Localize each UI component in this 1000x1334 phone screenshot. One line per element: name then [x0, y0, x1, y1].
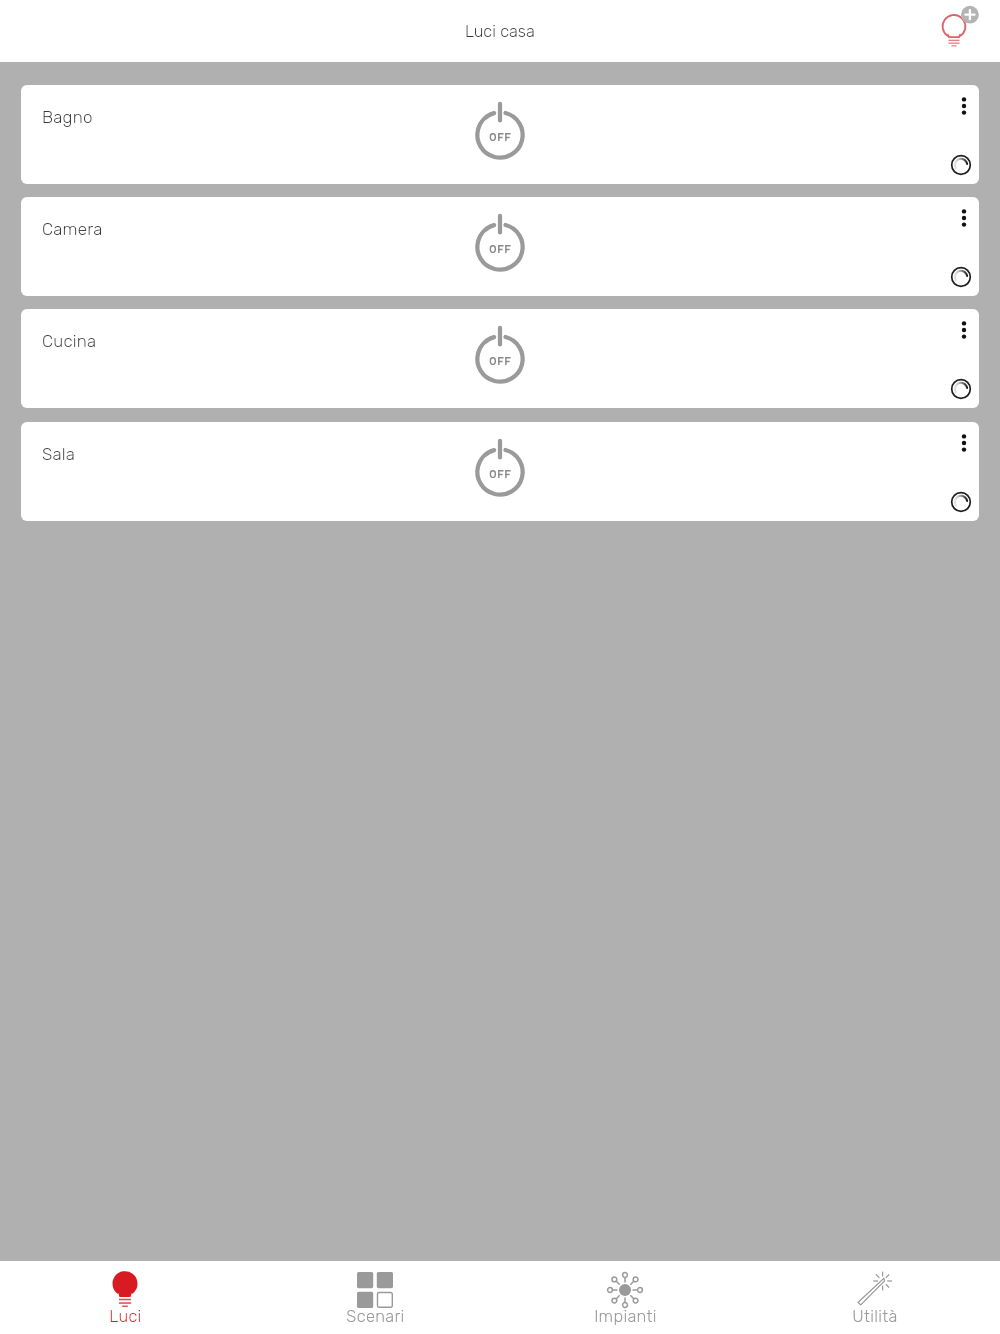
button[interactable]: Accendi Camera — [465, 212, 535, 282]
staticText: Luci casa — [465, 22, 535, 42]
staticText: Sala — [42, 444, 76, 464]
button[interactable]: Scenari — [250, 1261, 500, 1334]
button[interactable]: Regola intensità — [948, 152, 974, 178]
button[interactable]: Camera — [21, 197, 979, 296]
button[interactable]: Regola intensità — [948, 376, 974, 402]
button[interactable]: Accendi Cucina — [465, 324, 535, 394]
button[interactable]: Sala — [21, 422, 979, 521]
button[interactable]: Accendi Sala — [465, 437, 535, 507]
staticText: Impianti — [594, 1307, 657, 1327]
staticText: Scenari — [346, 1307, 405, 1327]
button[interactable]: Regola intensità — [948, 264, 974, 290]
button[interactable]: Altre opzioni — [949, 315, 979, 345]
staticText: Luci — [109, 1307, 142, 1327]
button[interactable]: Bagno — [21, 85, 979, 184]
button[interactable]: Regola intensità — [948, 489, 974, 515]
button[interactable]: Altre opzioni — [949, 203, 979, 233]
staticText: Bagno — [42, 107, 93, 127]
button[interactable]: Cucina — [21, 309, 979, 408]
button[interactable]: Altre opzioni — [949, 91, 979, 121]
button[interactable]: Accendi Bagno — [465, 100, 535, 170]
staticText: Cucina — [42, 331, 97, 351]
staticText: Utilità — [852, 1307, 898, 1327]
staticText: Camera — [42, 219, 103, 239]
button[interactable]: Luci — [0, 1261, 250, 1334]
button[interactable]: Aggiungi luce — [928, 1, 984, 57]
button[interactable]: Utilità — [750, 1261, 1000, 1334]
button[interactable]: Altre opzioni — [949, 428, 979, 458]
button[interactable]: Impianti — [500, 1261, 750, 1334]
